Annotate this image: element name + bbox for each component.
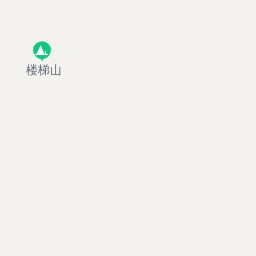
button[interactable]: 楼梯山, place marker xyxy=(26,40,62,76)
staticText: 楼梯山 xyxy=(26,62,62,77)
